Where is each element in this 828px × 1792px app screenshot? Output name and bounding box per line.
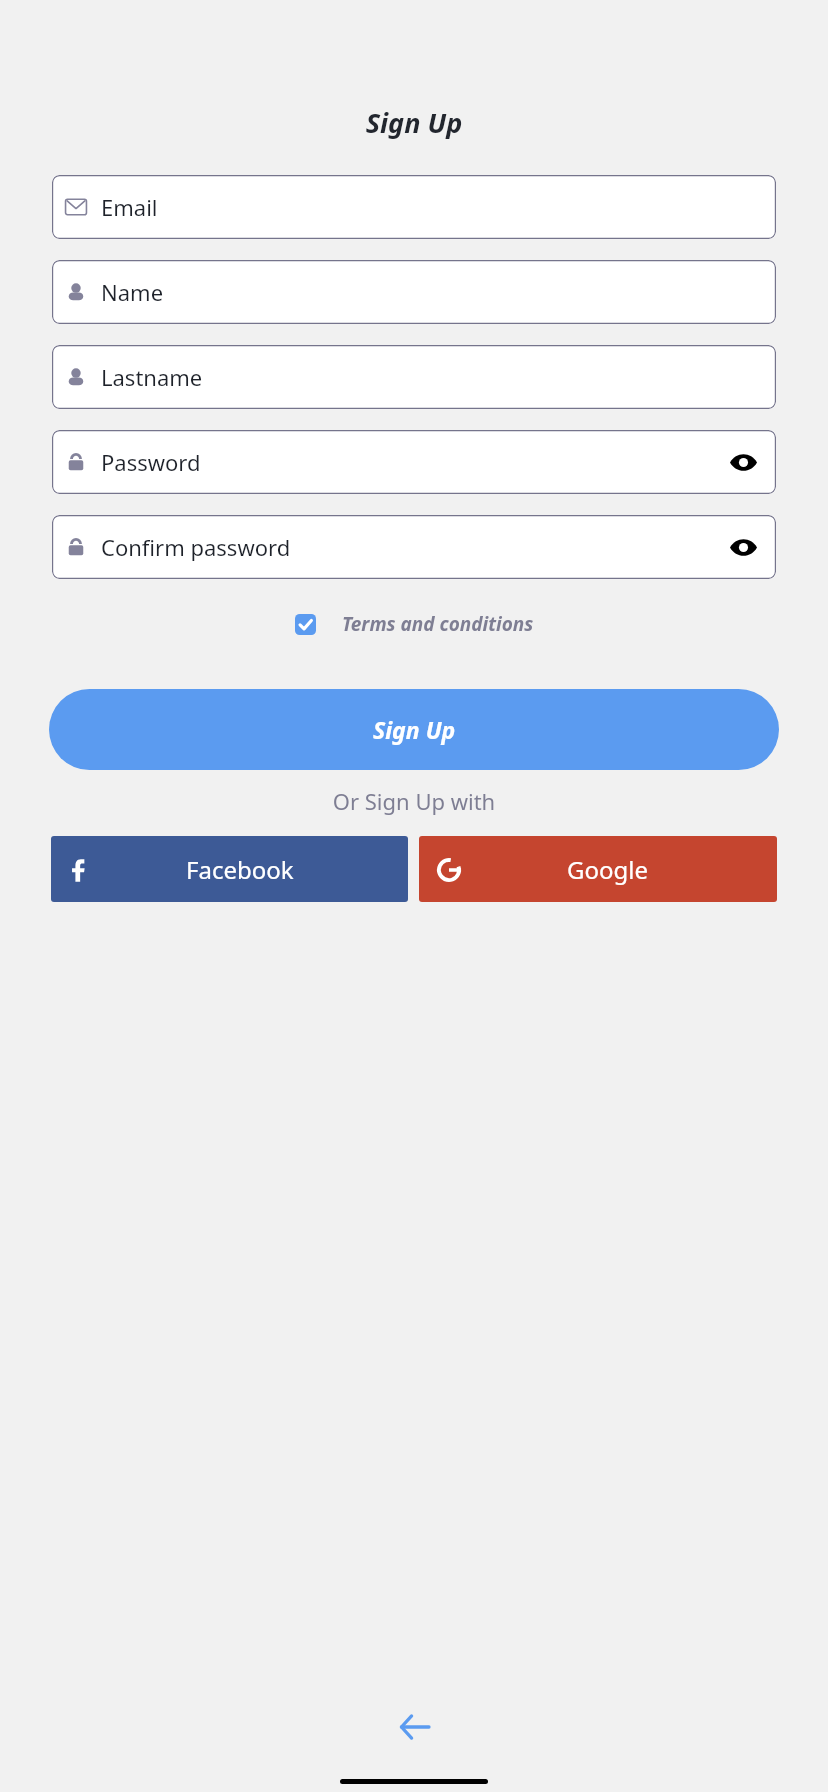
staticText: Email bbox=[101, 192, 158, 222]
staticText: Or Sign Up with bbox=[0, 786, 828, 816]
button[interactable]: Password bbox=[52, 430, 776, 494]
button[interactable]: Name bbox=[52, 260, 776, 324]
button[interactable]: Back bbox=[388, 1701, 440, 1753]
staticText: Lastname bbox=[101, 362, 203, 392]
button[interactable]: Lastname bbox=[52, 345, 776, 409]
staticText: Google bbox=[567, 853, 648, 886]
staticText: Name bbox=[101, 277, 164, 307]
button[interactable]: Terms and conditions bbox=[0, 611, 828, 637]
staticText: Sign Up bbox=[373, 714, 456, 745]
staticText: Password bbox=[101, 447, 201, 477]
button[interactable]: Facebook bbox=[51, 836, 408, 902]
button[interactable]: Confirm password bbox=[52, 515, 776, 579]
button[interactable]: Email bbox=[52, 175, 776, 239]
button[interactable]: Show password bbox=[727, 446, 759, 478]
staticText: Terms and conditions bbox=[342, 611, 534, 637]
button[interactable]: Google bbox=[419, 836, 777, 902]
staticText: Confirm password bbox=[101, 532, 291, 562]
button[interactable]: Show password bbox=[727, 531, 759, 563]
button[interactable]: Sign Up bbox=[49, 689, 779, 770]
staticText: Facebook bbox=[186, 853, 294, 886]
staticText: Sign Up bbox=[0, 104, 828, 141]
